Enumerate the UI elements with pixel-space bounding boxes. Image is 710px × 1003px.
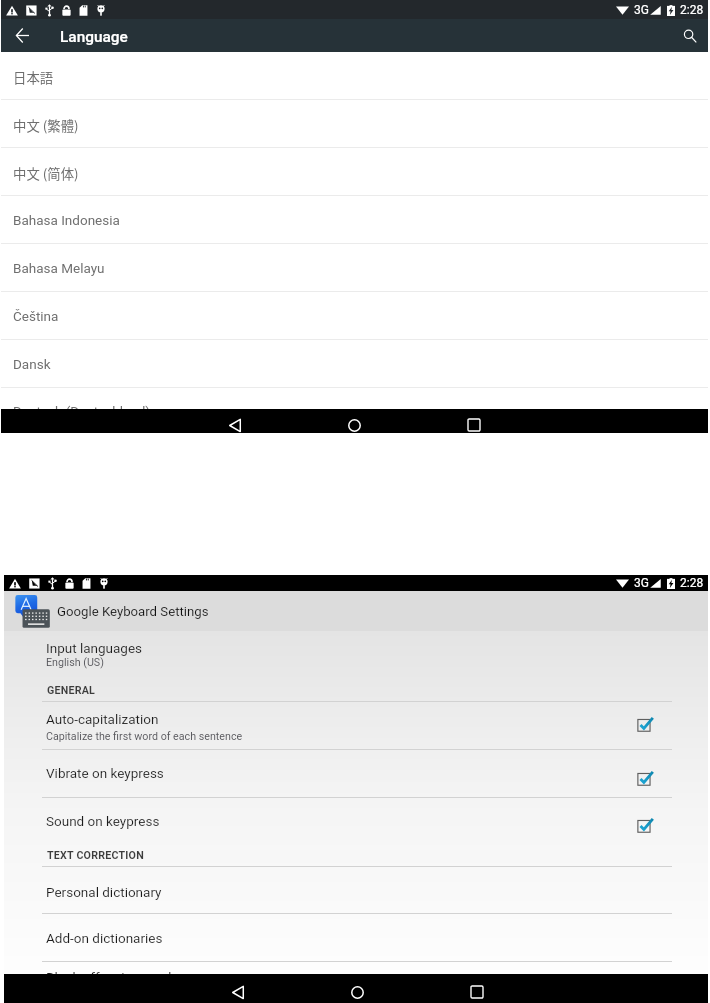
staticText: TEXT CORRECTION: [47, 849, 144, 862]
button[interactable]: Navigate up: [9, 22, 35, 48]
button[interactable]: Back: [223, 980, 253, 1003]
staticText: Capitalize the first word of each senten…: [46, 730, 243, 743]
button[interactable]: Recent apps: [459, 413, 489, 437]
button[interactable]: 日本語: [1, 52, 708, 100]
staticText: Auto-capitalization: [46, 711, 159, 727]
button[interactable]: Block offensive words: [4, 961, 708, 976]
staticText: Deutsch (Deutschland): [13, 403, 151, 419]
staticText: Language: [60, 28, 128, 46]
staticText: Block offensive words: [46, 969, 179, 984]
staticText: Sound on keypress: [46, 813, 160, 829]
button[interactable]: Vibrate on keypress: [4, 749, 708, 797]
staticText: 3G: [634, 3, 649, 17]
button[interactable]: Bahasa Indonesia: [1, 196, 708, 244]
staticText: 3G: [634, 576, 649, 590]
button[interactable]: 中文 (简体): [1, 148, 708, 196]
staticText: Bahasa Indonesia: [13, 212, 120, 228]
button[interactable]: Sound on keypress: [4, 797, 708, 845]
button[interactable]: Add-on dictionaries: [4, 913, 708, 961]
button[interactable]: Home: [342, 980, 372, 1003]
button[interactable]: Home: [339, 413, 369, 437]
staticText: Google Keyboard Settings: [57, 604, 209, 619]
staticText: 2:28: [680, 3, 704, 17]
button[interactable]: Deutsch (Deutschland): [1, 388, 708, 433]
button[interactable]: Personal dictionary: [4, 866, 708, 914]
button[interactable]: Search: [678, 24, 702, 48]
button[interactable]: Google Keyboard Settings: [4, 591, 708, 631]
staticText: Bahasa Melayu: [13, 260, 105, 276]
button[interactable]: Back: [220, 413, 250, 437]
staticText: 中文 (简体): [13, 163, 79, 182]
staticText: Add-on dictionaries: [46, 930, 163, 946]
button[interactable]: Bahasa Melayu: [1, 244, 708, 292]
staticText: Vibrate on keypress: [46, 765, 164, 781]
button[interactable]: Recent apps: [462, 980, 492, 1003]
staticText: 中文 (繁體): [13, 115, 79, 134]
staticText: Personal dictionary: [46, 884, 162, 900]
button[interactable]: Dansk: [1, 340, 708, 388]
button[interactable]: Čeština: [1, 292, 708, 340]
staticText: 2:28: [680, 576, 704, 590]
staticText: 日本語: [13, 67, 54, 86]
staticText: Dansk: [13, 356, 51, 372]
staticText: Čeština: [13, 308, 59, 324]
button[interactable]: 中文 (繁體): [1, 100, 708, 148]
button[interactable]: Auto-capitalization: [4, 701, 708, 749]
staticText: GENERAL: [47, 684, 96, 697]
button[interactable]: Input languages: [4, 631, 708, 701]
staticText: Input languages: [46, 640, 143, 656]
staticText: English (US): [46, 656, 104, 669]
